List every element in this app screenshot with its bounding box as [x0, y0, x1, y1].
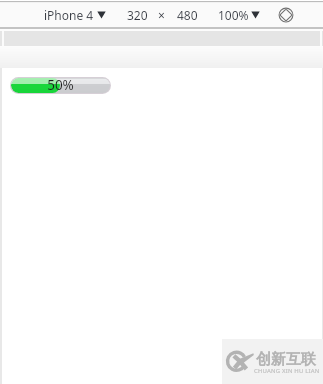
staticText: ×	[158, 7, 165, 23]
staticText: 100%	[218, 7, 249, 23]
staticText: 50%	[11, 78, 110, 91]
button[interactable]: 100%	[218, 3, 260, 27]
button[interactable]: iPhone 4	[44, 3, 106, 27]
staticText: 320	[127, 7, 148, 23]
staticText: CHUANG XIN HU LIAN	[254, 367, 320, 375]
button[interactable]: Rotate screen	[277, 3, 295, 27]
staticText: iPhone 4	[44, 7, 94, 23]
staticText: 480	[177, 7, 198, 23]
staticText: 创新互联	[256, 350, 316, 369]
button[interactable]: 50%	[11, 78, 110, 93]
